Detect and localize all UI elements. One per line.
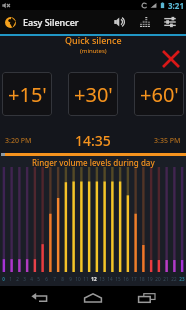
staticText: 21 xyxy=(163,276,169,282)
staticText: 22 xyxy=(171,276,177,282)
staticText: 23 xyxy=(179,276,185,282)
staticText: 11 xyxy=(83,276,89,282)
button[interactable]: +30' xyxy=(68,72,118,116)
button[interactable]: Cancel silence xyxy=(160,48,182,70)
staticText: 12 xyxy=(91,276,97,282)
staticText: 3:20 PM xyxy=(5,136,32,146)
staticText: 16 xyxy=(123,276,129,282)
staticText: +15' xyxy=(8,81,47,108)
staticText: 13 xyxy=(99,276,105,282)
staticText: Ringer volume levels during day xyxy=(32,157,155,168)
staticText: 0 xyxy=(2,276,5,282)
staticText: 19 xyxy=(147,276,153,282)
staticText: 7 xyxy=(53,276,56,282)
button[interactable]: +60' xyxy=(134,72,184,116)
button[interactable]: Home xyxy=(66,286,120,310)
staticText: 14:35 xyxy=(75,131,111,150)
staticText: 15 xyxy=(115,276,121,282)
staticText: 9 xyxy=(69,276,72,282)
staticText: 3 xyxy=(23,276,26,282)
button[interactable]: Recents xyxy=(120,286,174,310)
staticText: Quick silence xyxy=(65,34,122,46)
staticText: 4 xyxy=(30,276,33,282)
staticText: Easy Silencer xyxy=(23,16,79,28)
button[interactable]: +15' xyxy=(2,72,52,116)
staticText: 8 xyxy=(61,276,64,282)
staticText: 1 xyxy=(9,276,12,282)
staticText: 18 xyxy=(139,276,145,282)
staticText: 6 xyxy=(45,276,48,282)
button[interactable]: Ringer volume xyxy=(107,10,132,34)
staticText: 5 xyxy=(37,276,40,282)
staticText: 20 xyxy=(155,276,161,282)
button[interactable]: Back xyxy=(12,286,66,310)
button[interactable]: Volume levels xyxy=(132,10,157,34)
staticText: 3:21 xyxy=(168,0,184,10)
staticText: 10 xyxy=(75,276,81,282)
button[interactable]: Settings xyxy=(157,10,182,34)
staticText: +60' xyxy=(140,81,179,108)
staticText: 14 xyxy=(107,276,113,282)
staticText: +30' xyxy=(74,81,113,108)
staticText: 3:35 PM xyxy=(154,136,181,146)
staticText: 2 xyxy=(16,276,19,282)
staticText: 17 xyxy=(131,276,137,282)
staticText: (minutes) xyxy=(80,47,107,55)
